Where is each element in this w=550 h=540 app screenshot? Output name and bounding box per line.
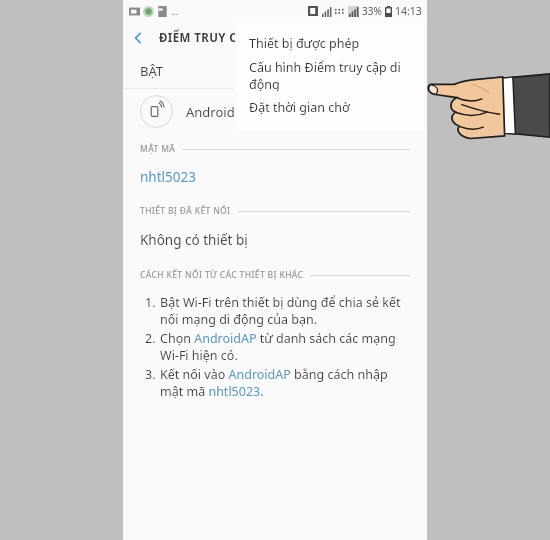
staticText: 14:13 xyxy=(395,4,422,18)
staticText: THIẾT BỊ ĐÃ KẾT NỐI xyxy=(140,205,231,217)
staticText: Bật Wi-Fi trên thiết bị dùng để chia sẻ … xyxy=(160,294,411,328)
button[interactable]: Cấu hình Điểm truy cập di động xyxy=(235,59,427,91)
staticText: CÁCH KẾT NỐI TỪ CÁC THIẾT BỊ KHÁC xyxy=(140,269,304,281)
button[interactable]: Back xyxy=(123,23,153,53)
staticText: ĐIỂM TRUY CẬP DI ĐỘNG xyxy=(159,30,311,46)
staticText: ... xyxy=(171,5,179,17)
staticText: Cấu hình Điểm truy cập di động xyxy=(249,59,427,91)
staticText: Chọn AndroidAP từ danh sách các mạng Wi-… xyxy=(160,330,411,364)
staticText: 2. xyxy=(145,330,160,347)
staticText: Đặt thời gian chờ xyxy=(249,99,350,116)
staticText: Kết nối vào AndroidAP bằng cách nhập mật… xyxy=(160,366,411,400)
button[interactable]: AndroidAP xyxy=(123,89,427,134)
staticText: Thiết bị được phép xyxy=(249,35,360,52)
staticText: Không có thiết bị xyxy=(140,231,248,249)
button[interactable]: Đặt thời gian chờ xyxy=(235,91,427,123)
button[interactable]: BẬT xyxy=(123,53,427,88)
staticText: 33% xyxy=(362,4,382,18)
button[interactable]: Thiết bị được phép xyxy=(235,27,427,59)
staticText: MẬT MÃ xyxy=(140,143,176,155)
staticText: 1. xyxy=(145,294,160,311)
staticText: 3. xyxy=(145,366,160,383)
staticText: AndroidAP xyxy=(186,103,251,121)
staticText: nhtl5023 xyxy=(140,168,196,186)
staticText: BẬT xyxy=(140,62,164,80)
